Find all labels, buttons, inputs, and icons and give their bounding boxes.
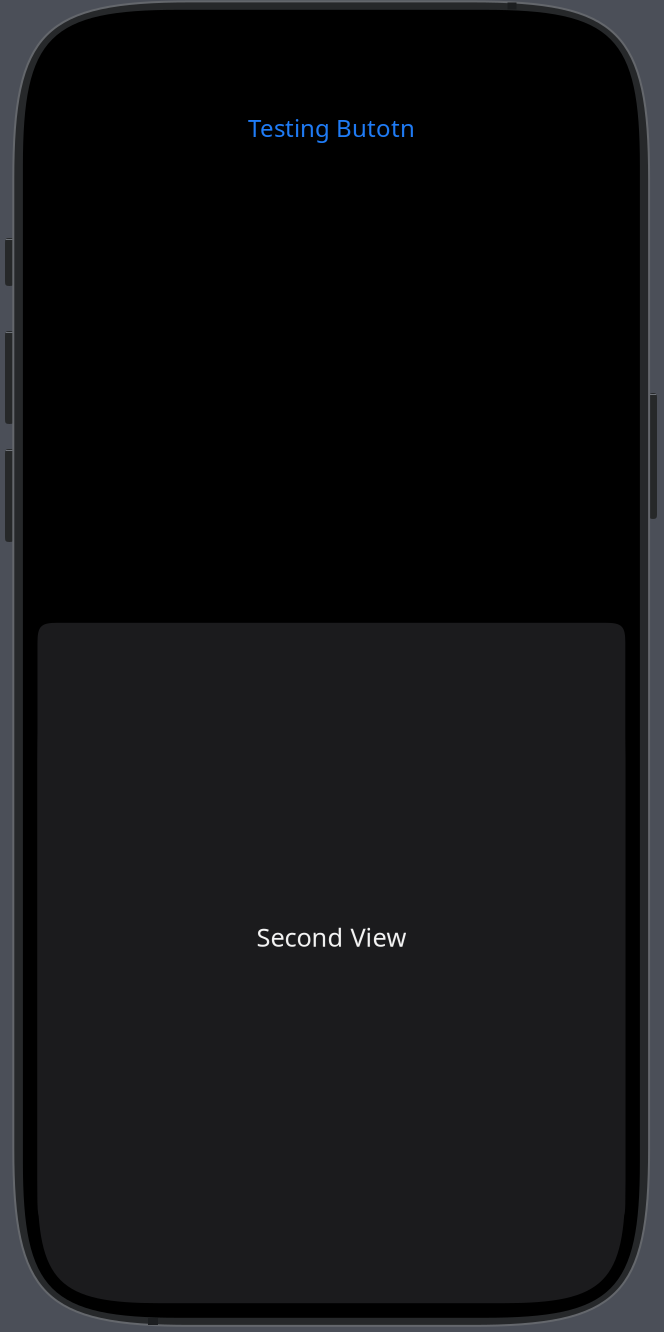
staticText: Testing Butotn — [248, 112, 415, 144]
button[interactable]: Testing Butotn — [23, 104, 640, 152]
staticText: Second View — [256, 920, 406, 954]
